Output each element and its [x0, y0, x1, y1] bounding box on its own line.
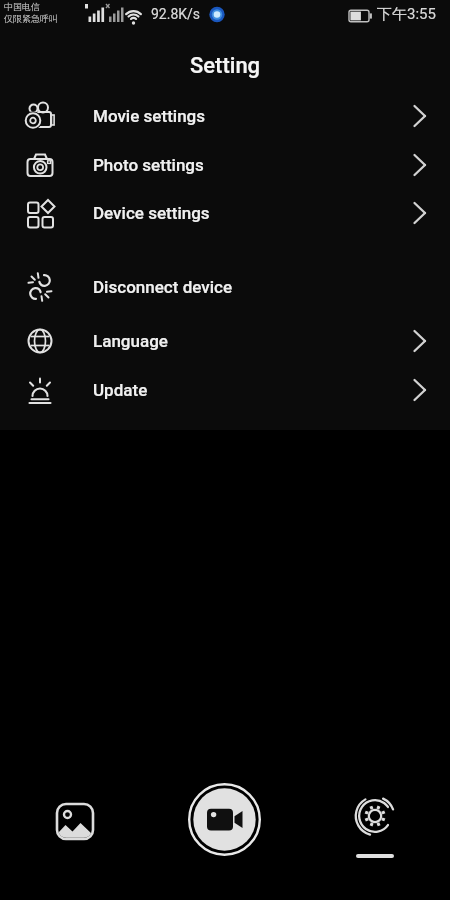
- staticText: 仅限紧急呼叫: [4, 13, 58, 24]
- staticText: Setting: [190, 53, 261, 79]
- button[interactable]: Update: [0, 366, 450, 414]
- button[interactable]: Disconnect device: [0, 263, 450, 311]
- staticText: Photo settings: [93, 155, 204, 175]
- staticText: Disconnect device: [93, 277, 233, 297]
- staticText: 92.8K/s: [151, 6, 201, 22]
- button[interactable]: Movie settings: [0, 92, 450, 140]
- staticText: Update: [93, 380, 148, 400]
- staticText: Device settings: [93, 203, 210, 223]
- staticText: Language: [93, 331, 168, 351]
- button[interactable]: [51, 797, 99, 845]
- staticText: 中国电信: [4, 1, 40, 12]
- button[interactable]: [351, 792, 399, 840]
- staticText: 下午3:55: [377, 5, 436, 24]
- button[interactable]: Device settings: [0, 189, 450, 237]
- button[interactable]: Photo settings: [0, 141, 450, 189]
- button[interactable]: Language: [0, 317, 450, 365]
- button[interactable]: [186, 781, 263, 858]
- staticText: Movie settings: [93, 106, 206, 126]
